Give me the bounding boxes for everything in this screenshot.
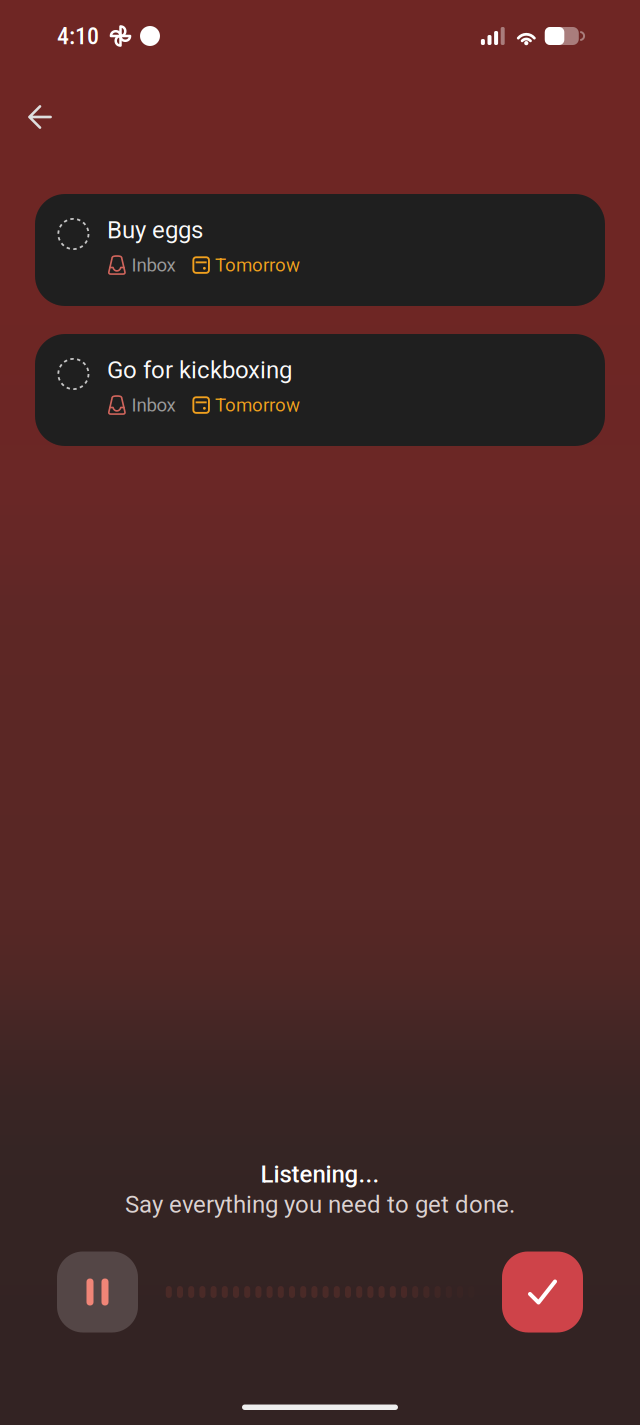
staticText: Buy eggs bbox=[107, 216, 203, 244]
button[interactable]: Pause recording bbox=[57, 1251, 138, 1332]
staticText: 4:10 bbox=[57, 22, 99, 50]
button[interactable]: Buy eggs bbox=[35, 194, 605, 306]
button[interactable]: Back bbox=[16, 93, 64, 141]
staticText: Listening... bbox=[260, 1160, 379, 1188]
staticText: Tomorrow bbox=[215, 394, 300, 416]
button[interactable]: Go for kickboxing bbox=[35, 334, 605, 446]
button[interactable]: Done bbox=[502, 1251, 583, 1332]
staticText: Go for kickboxing bbox=[107, 356, 292, 384]
staticText: Inbox bbox=[131, 394, 175, 416]
staticText: Inbox bbox=[131, 254, 175, 276]
staticText: Say everything you need to get done. bbox=[125, 1190, 515, 1218]
staticText: Tomorrow bbox=[215, 254, 300, 276]
